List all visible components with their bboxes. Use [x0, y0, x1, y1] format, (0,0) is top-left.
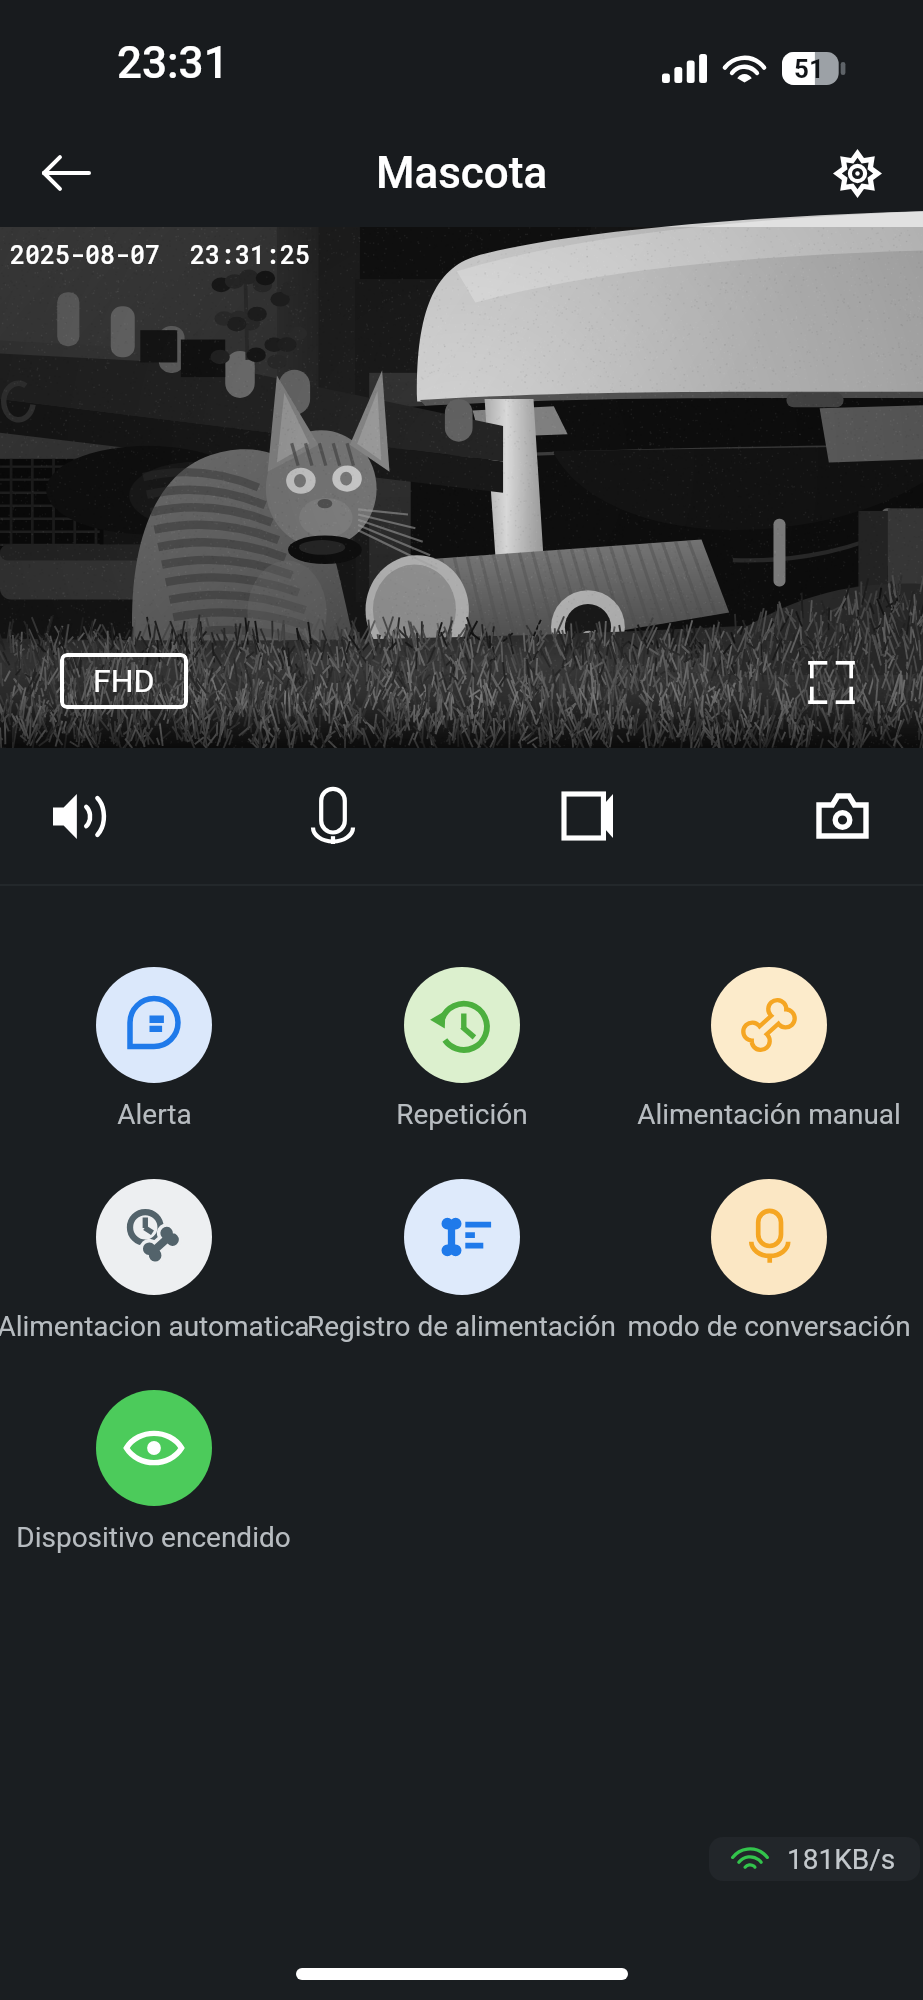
- staticText: FHD: [93, 662, 155, 700]
- staticText: 2025-08-07 23:31:25: [10, 238, 311, 271]
- button[interactable]: Alerta: [0, 967, 307, 1131]
- button[interactable]: Alimentacion automatica: [0, 1179, 307, 1343]
- button[interactable]: Settings: [815, 131, 899, 215]
- staticText: 23:31: [117, 37, 229, 89]
- staticText: Alimentacion automatica: [0, 1310, 310, 1343]
- button[interactable]: Fullscreen: [796, 647, 866, 717]
- staticText: modo de conversación: [627, 1310, 911, 1343]
- button[interactable]: Microphone: [277, 760, 389, 872]
- button[interactable]: FHD: [60, 653, 188, 709]
- button[interactable]: Record video: [532, 760, 644, 872]
- staticText: Mascota: [376, 147, 548, 199]
- button[interactable]: Dispositivo encendido: [0, 1390, 307, 1554]
- button[interactable]: 181KB/s: [709, 1837, 920, 1881]
- button[interactable]: Alimentación manual: [615, 967, 922, 1131]
- staticText: 181KB/s: [787, 1843, 896, 1876]
- button[interactable]: Registro de alimentación: [308, 1179, 615, 1343]
- button[interactable]: modo de conversación: [615, 1179, 922, 1343]
- staticText: Alerta: [117, 1098, 192, 1131]
- staticText: Registro de alimentación: [307, 1310, 616, 1343]
- button[interactable]: Sound: [23, 760, 135, 872]
- button[interactable]: Repetición: [308, 967, 615, 1131]
- button[interactable]: Back: [24, 131, 108, 215]
- staticText: Alimentación manual: [637, 1098, 901, 1131]
- staticText: 51: [794, 54, 824, 84]
- staticText: Repetición: [396, 1098, 528, 1131]
- button[interactable]: Take snapshot: [786, 760, 898, 872]
- staticText: Dispositivo encendido: [16, 1521, 291, 1554]
